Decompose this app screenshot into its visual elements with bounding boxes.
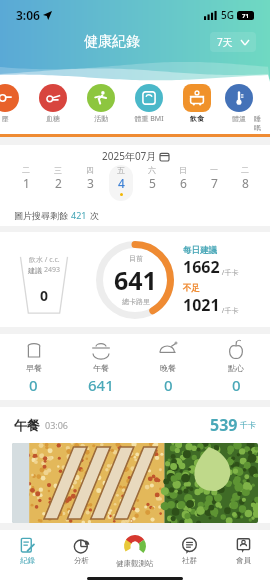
staticText: 圖片搜尋剩餘 [14,210,68,221]
staticText: /千卡 [220,306,239,316]
staticText: 0 [232,375,241,395]
staticText: 2 [55,175,62,191]
button[interactable]: 一 [210,165,218,191]
staticText: 次 [90,210,99,221]
staticText: 午餐 [14,417,40,433]
button[interactable]: 飲食 [176,82,218,123]
staticText: 一 [210,165,218,175]
staticText: 晚餐 [160,363,176,373]
staticText: 641 [114,263,157,297]
staticText: 641 [88,375,114,395]
button[interactable]: 晚餐 [134,334,202,400]
staticText: 2493 [44,265,61,275]
staticText: 會員 [236,556,251,565]
button[interactable]: 點心 [202,334,270,400]
staticText: 午餐 [93,363,109,373]
staticText: 體重 BMI [134,114,164,124]
staticText: 點心 [228,363,244,373]
button[interactable]: 二 [241,165,249,191]
button[interactable]: 日 [179,165,187,191]
button[interactable]: 飲水 / c.c. [0,232,270,327]
staticText: 不足 [183,283,200,294]
button[interactable]: 會員 [216,530,270,572]
staticText: 健康觀測站 [116,559,154,568]
staticText: 活動 [94,114,108,123]
staticText: 8 [242,175,249,191]
staticText: 日 [179,165,187,175]
staticText: 五 [117,165,125,175]
button[interactable]: 社群 [162,530,216,572]
staticText: 7天 [217,35,233,49]
button[interactable]: 午餐 [67,334,134,400]
staticText: 三 [54,165,62,175]
staticText: 71 [242,12,249,20]
staticText: 03:06 [45,419,69,431]
staticText: 血糖 [46,114,60,123]
button[interactable]: 活動 [80,82,122,123]
button[interactable]: 健康觀測站 [108,530,162,572]
staticText: 飲食 [190,114,204,123]
staticText: 5 [149,175,156,191]
staticText: 4 [118,175,125,191]
button[interactable]: 六 [148,165,156,191]
staticText: 1662 [183,256,220,278]
staticText: 千卡 [240,420,256,430]
staticText: 539 [210,414,238,436]
staticText: 總卡路里 [122,297,150,306]
button[interactable]: 二 [22,165,30,191]
staticText: 1 [23,175,30,191]
button[interactable]: 分析 [54,530,108,572]
staticText: 5G [221,8,234,22]
staticText: /千卡 [220,268,239,278]
staticText: 0 [29,375,38,395]
button[interactable]: 早餐 [0,334,67,400]
staticText: 紀錄 [20,556,35,565]
button[interactable]: 壓 [0,82,26,123]
staticText: 3:06 [16,7,40,23]
staticText: 分析 [74,556,89,565]
staticText: 421 [71,209,87,221]
button[interactable]: 紀錄 [0,530,54,572]
button[interactable]: 三 [54,165,62,191]
button[interactable]: 四 [86,165,94,191]
staticText: 體溫 [232,114,246,123]
staticText: 社群 [182,556,197,565]
button[interactable]: 午餐 [14,414,256,436]
staticText: 7 [211,175,218,191]
staticText: 早餐 [26,363,42,373]
staticText: 壓 [2,114,9,123]
staticText: 二 [22,165,30,175]
staticText: 建議 [28,266,42,275]
staticText: 0 [164,375,173,395]
staticText: 四 [86,165,94,175]
button[interactable]: 血糖 [32,82,74,123]
staticText: 1021 [183,294,220,316]
staticText: 2025年07月 [102,149,157,163]
staticText: 健康紀錄 [84,33,140,51]
staticText: 3 [87,175,94,191]
staticText: 目前 [129,254,143,263]
staticText: 飲水 / c.c. [29,255,60,265]
button[interactable]: 五 [117,165,125,196]
button[interactable]: 體重 BMI [128,82,170,124]
button[interactable]: 7天 [210,32,256,52]
staticText: 6 [180,175,187,191]
staticText: 每日建議 [183,245,217,256]
staticText: 二 [241,165,249,175]
button[interactable]: 體溫 [224,82,254,123]
staticText: 0 [40,286,49,305]
staticText: 六 [148,165,156,175]
